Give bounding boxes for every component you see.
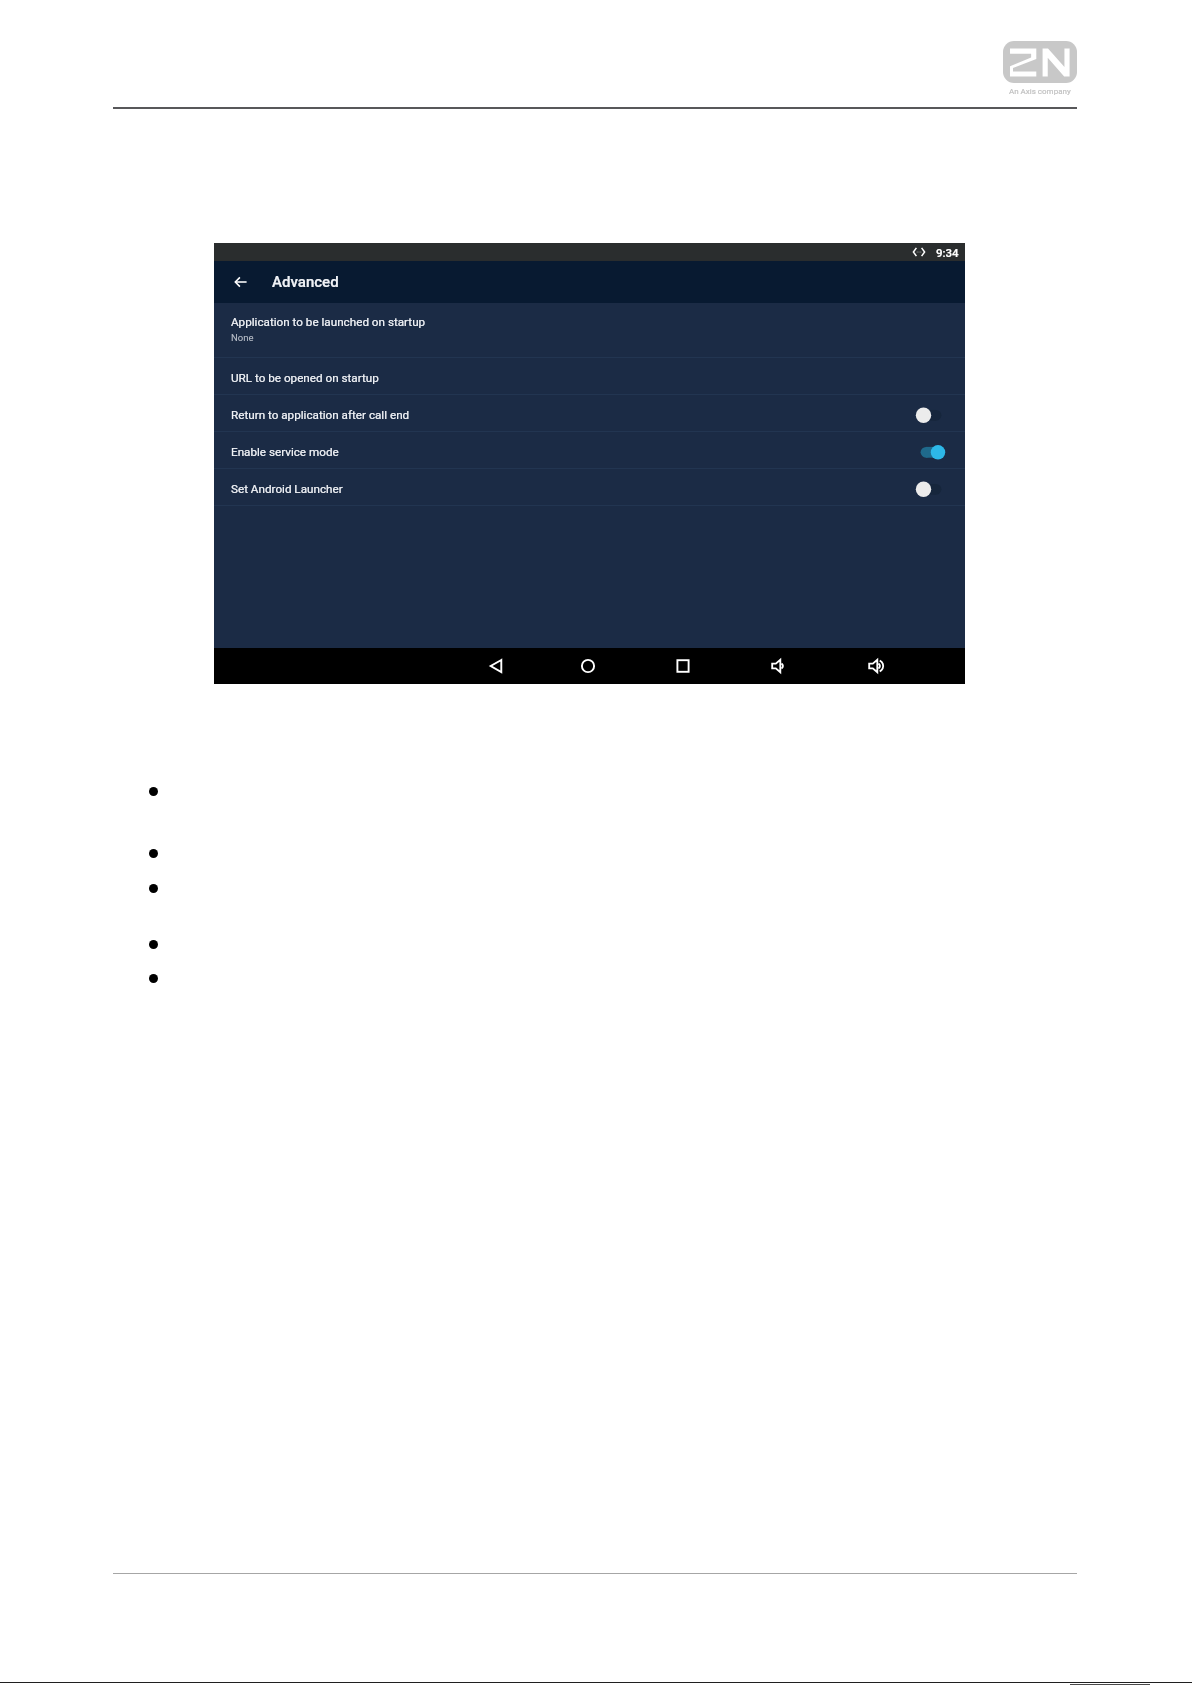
staticText: None bbox=[231, 332, 254, 343]
button[interactable]: URL to be opened on startup bbox=[214, 358, 965, 394]
button[interactable]: Return to application after call end bbox=[214, 395, 965, 431]
staticText: Application to be launched on startup bbox=[231, 315, 426, 329]
button[interactable]: Home bbox=[570, 648, 606, 684]
button[interactable]: Application to be launched on startup bbox=[214, 303, 965, 357]
button[interactable]: Back bbox=[478, 648, 514, 684]
button[interactable]: Toggle off bbox=[915, 474, 947, 500]
staticText: URL to be opened on startup bbox=[231, 371, 379, 385]
staticText: An Axis company bbox=[1009, 87, 1071, 96]
button[interactable]: Set Android Launcher bbox=[214, 469, 965, 505]
button[interactable]: Enable service mode bbox=[214, 432, 965, 468]
button[interactable]: Recent apps bbox=[665, 648, 701, 684]
staticText: Enable service mode bbox=[231, 445, 339, 459]
staticText: Set Android Launcher bbox=[231, 482, 343, 496]
button[interactable]: Volume down bbox=[761, 648, 797, 684]
button[interactable]: Back bbox=[214, 261, 268, 303]
staticText: Advanced bbox=[272, 273, 339, 291]
staticText: 9:34 bbox=[936, 246, 959, 259]
button[interactable]: Volume up bbox=[858, 648, 894, 684]
button[interactable]: Toggle on bbox=[915, 437, 947, 463]
staticText: Return to application after call end bbox=[231, 408, 410, 422]
button[interactable]: Toggle off bbox=[915, 400, 947, 426]
